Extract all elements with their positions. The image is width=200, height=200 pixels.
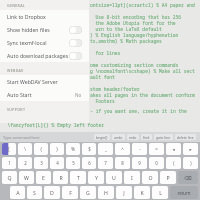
button[interactable]: find xyxy=(141,134,152,140)
button[interactable]: Start WebDAV Server xyxy=(0,75,89,88)
staticText: 5 xyxy=(72,160,75,166)
button[interactable]: 7 xyxy=(98,157,113,169)
staticText: Type command here xyxy=(3,135,93,140)
button[interactable]: Y xyxy=(88,171,104,184)
button[interactable]: S xyxy=(27,186,42,199)
button[interactable]: E xyxy=(36,171,51,184)
button[interactable]: K xyxy=(134,186,150,199)
staticText: undo xyxy=(114,135,123,140)
staticText: K xyxy=(140,189,144,196)
button[interactable]: H xyxy=(98,186,114,199)
button[interactable]: } xyxy=(50,143,64,155)
button[interactable]: Show hidden files xyxy=(0,23,89,36)
button[interactable]: ^ xyxy=(115,143,130,155)
staticText: ault font xyxy=(90,74,115,80)
button[interactable]: Q xyxy=(2,171,17,184)
staticText: 8 xyxy=(121,160,124,166)
button[interactable]: Toggle xyxy=(69,52,82,60)
button[interactable]: undo xyxy=(112,134,125,140)
staticText: Link to Dropbox xyxy=(7,13,82,20)
button[interactable]: = xyxy=(149,143,164,155)
staticText: Show hidden files xyxy=(7,26,69,33)
staticText: No xyxy=(75,92,82,98)
button[interactable]: W xyxy=(19,171,34,184)
button[interactable]: ⌫ xyxy=(178,171,198,184)
button[interactable]: Auto Start xyxy=(0,88,89,101)
staticText: 7 xyxy=(104,160,107,166)
button[interactable]: ◂ xyxy=(166,143,181,155)
button[interactable]: Toggle xyxy=(69,26,82,34)
staticText: T xyxy=(77,174,80,181)
staticText: ts,amsthm} % Math packages xyxy=(90,38,162,44)
button[interactable]: T xyxy=(70,171,86,184)
staticText: the Adobe Utopia font for the document xyxy=(90,20,200,26)
button[interactable]: U xyxy=(106,171,122,184)
button[interactable]: 2 xyxy=(18,157,32,169)
staticText: L xyxy=(159,189,162,196)
button[interactable]: F xyxy=(62,186,78,199)
button[interactable]: 6 xyxy=(82,157,96,169)
button[interactable]: R xyxy=(53,171,68,184)
button[interactable]: I xyxy=(124,171,140,184)
button[interactable]: _ xyxy=(98,143,113,155)
button[interactable]: Toggle xyxy=(69,39,82,47)
staticText: A xyxy=(16,189,20,196)
button[interactable]: A xyxy=(10,186,25,199)
button[interactable]: L xyxy=(152,186,168,199)
staticText: goto line xyxy=(156,135,171,140)
staticText: $ xyxy=(88,146,91,152)
button[interactable]: J xyxy=(116,186,132,199)
staticText: [ xyxy=(8,146,10,152)
staticText: ⌫ xyxy=(184,175,192,181)
button[interactable]: 8 xyxy=(115,157,130,169)
staticText: akes all pages in the document conform xyxy=(90,92,195,98)
button[interactable]: ) xyxy=(183,157,198,169)
button[interactable]: Auto download packages xyxy=(0,49,89,62)
button[interactable]: \ xyxy=(18,143,32,155)
button[interactable]: return xyxy=(170,186,198,199)
button[interactable]: begin{} xyxy=(94,134,110,140)
button[interactable]: 4 xyxy=(50,157,64,169)
button[interactable]: 1 xyxy=(2,157,16,169)
button[interactable]: 5 xyxy=(66,157,80,169)
button[interactable]: - xyxy=(132,143,147,155)
button[interactable]: P xyxy=(160,171,176,184)
staticText: F xyxy=(69,189,72,196)
staticText: 1 xyxy=(8,160,11,166)
staticText: urn to the LaTeX default xyxy=(90,26,162,32)
button[interactable]: ▸ xyxy=(183,143,198,155)
button[interactable]: 9 xyxy=(132,157,147,169)
staticText: for lines xyxy=(90,50,121,56)
staticText: ( xyxy=(173,160,175,166)
staticText: S xyxy=(33,189,36,196)
button[interactable]: 3 xyxy=(34,157,48,169)
staticText: \ xyxy=(24,146,26,152)
staticText: ▸ xyxy=(189,147,192,152)
staticText: Auto download packages xyxy=(7,52,69,59)
button[interactable]: G xyxy=(80,186,96,199)
button[interactable]: O xyxy=(142,171,158,184)
staticText: R xyxy=(59,174,63,181)
staticText: D xyxy=(50,189,54,196)
staticText: GENERAL xyxy=(7,3,26,8)
button[interactable]: Link to Dropbox xyxy=(0,10,89,23)
staticText: ◂ xyxy=(172,147,175,152)
button[interactable]: Sync texmf-local xyxy=(0,36,89,49)
button[interactable]: delete line xyxy=(175,134,196,140)
button[interactable]: ( xyxy=(166,157,181,169)
button[interactable]: D xyxy=(44,186,60,199)
button[interactable]: goto line xyxy=(154,134,173,140)
staticText: Footers xyxy=(90,98,115,104)
staticText: Q xyxy=(7,174,12,181)
button[interactable]: % xyxy=(66,143,80,155)
staticText: H xyxy=(104,189,108,196)
staticText: J xyxy=(123,189,125,196)
button[interactable]: [ xyxy=(2,143,16,155)
button[interactable]: $ xyxy=(82,143,96,155)
button[interactable]: redo xyxy=(127,134,139,140)
button[interactable]: { xyxy=(34,143,48,155)
staticText: E xyxy=(42,174,45,181)
button[interactable]: 0 xyxy=(149,157,164,169)
staticText: delete line xyxy=(177,135,194,140)
